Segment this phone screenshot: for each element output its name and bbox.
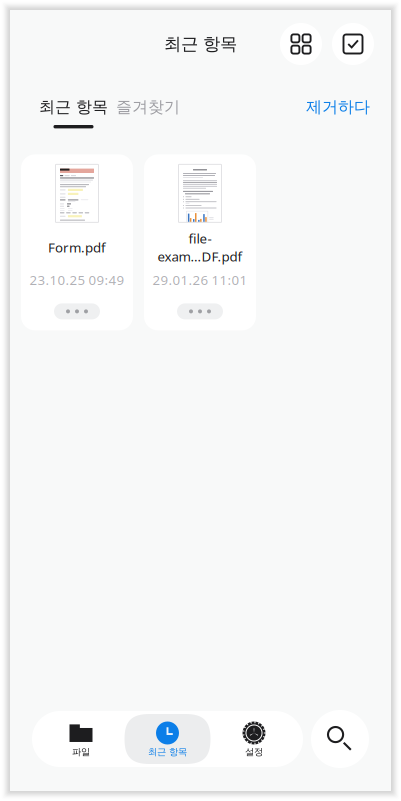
staticText: Form.pdf (48, 238, 106, 256)
staticText: file- (188, 229, 211, 247)
staticText: 최근 항목 (164, 33, 237, 55)
button[interactable]: 최근 항목 (39, 97, 108, 128)
button[interactable]: Select items (332, 23, 374, 65)
staticText: 최근 항목 (39, 97, 108, 117)
staticText: exam…DF.pdf (157, 247, 242, 265)
staticText: 즐겨찾기 (116, 97, 180, 117)
button[interactable]: 설정 (210, 714, 297, 764)
staticText: 최근 항목 (148, 746, 187, 758)
button[interactable]: 즐겨찾기 (116, 97, 180, 128)
staticText: 23.10.25 09:49 (29, 271, 124, 289)
staticText: 제거하다 (306, 97, 370, 117)
button[interactable]: Grid view (280, 23, 322, 65)
button[interactable]: 최근 항목 (124, 714, 210, 764)
button[interactable]: Form.pdf (21, 154, 133, 330)
staticText: 설정 (245, 746, 263, 758)
button[interactable]: Search (311, 710, 369, 768)
button[interactable]: 파일 (37, 714, 124, 764)
staticText: 파일 (72, 746, 90, 758)
button[interactable]: file- (144, 154, 256, 330)
button[interactable]: 제거하다 (306, 97, 370, 128)
staticText: 29.01.26 11:01 (152, 271, 247, 289)
